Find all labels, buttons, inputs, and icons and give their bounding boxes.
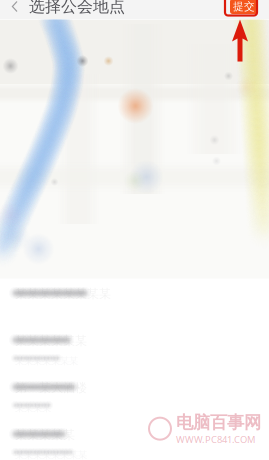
staticText: 第一某大酒楼 [15,380,87,395]
staticText: 某某某某 [15,402,51,414]
button[interactable]: 第一某大酒楼 [0,372,269,419]
staticText: WWW.PC841.COM [176,433,255,445]
staticText: 某某某某某某某 [15,355,78,367]
staticText: 某某某某某某某某 [15,449,87,460]
staticText: 某某某某某某某某 [15,286,111,301]
staticText: 某某某某某 [15,427,75,442]
staticText: 选择公会地点 [29,0,125,16]
staticText: 电脑百事网 [176,412,261,433]
staticText: 提交 [233,0,255,13]
button[interactable]: 提交 [230,0,258,14]
button[interactable]: 某某某某某某 [0,325,269,372]
button[interactable]: 某某某某某某某某 [0,278,269,325]
staticText: 某某某某某某 [15,333,87,348]
button[interactable]: Back [0,0,29,19]
button[interactable]: 某某某某某 [0,419,269,460]
